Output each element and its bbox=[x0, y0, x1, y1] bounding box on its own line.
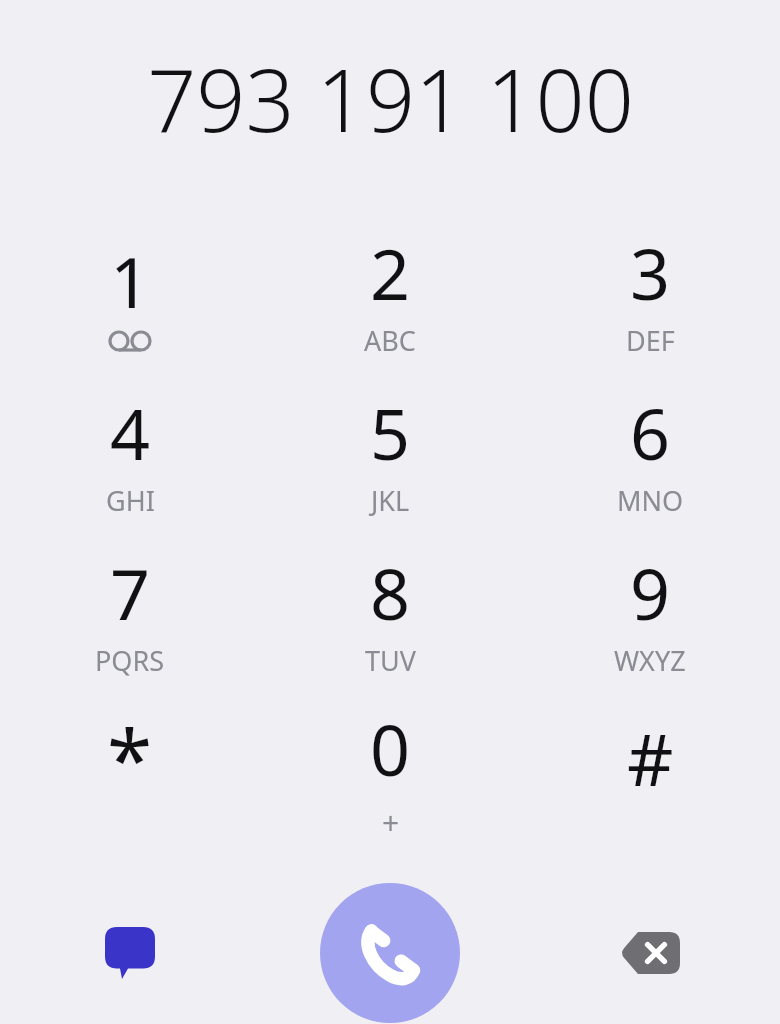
staticText: * bbox=[107, 702, 153, 814]
button[interactable]: 6 bbox=[520, 372, 780, 532]
staticText: 793 191 100 bbox=[147, 40, 634, 150]
staticText: # bbox=[627, 709, 674, 807]
staticText: 9 bbox=[630, 545, 671, 640]
staticText: DEF bbox=[626, 322, 675, 359]
button[interactable]: Send message bbox=[0, 882, 260, 1024]
staticText: 5 bbox=[370, 385, 411, 480]
staticText: MNO bbox=[617, 482, 684, 519]
staticText: 8 bbox=[370, 545, 411, 640]
staticText: JKL bbox=[371, 482, 410, 519]
button[interactable]: 9 bbox=[520, 532, 780, 692]
button[interactable]: # bbox=[520, 692, 780, 852]
button[interactable]: 0 bbox=[260, 692, 520, 852]
staticText: 6 bbox=[630, 385, 671, 480]
staticText: 7 bbox=[110, 545, 151, 640]
staticText: TUV bbox=[365, 642, 416, 679]
staticText: PQRS bbox=[95, 642, 165, 679]
staticText: 3 bbox=[630, 225, 671, 320]
button[interactable]: 2 bbox=[260, 212, 520, 372]
staticText: 1 bbox=[110, 233, 151, 328]
button[interactable]: * bbox=[0, 692, 260, 852]
button[interactable]: 4 bbox=[0, 372, 260, 532]
button[interactable]: 7 bbox=[0, 532, 260, 692]
button[interactable]: 8 bbox=[260, 532, 520, 692]
button[interactable]: Call bbox=[320, 883, 460, 1023]
button[interactable]: Backspace bbox=[520, 882, 780, 1024]
button[interactable]: 3 bbox=[520, 212, 780, 372]
staticText: 2 bbox=[370, 225, 411, 320]
staticText: 4 bbox=[110, 385, 151, 480]
staticText: 0 bbox=[370, 701, 411, 796]
staticText: WXYZ bbox=[614, 642, 686, 679]
staticText: + bbox=[382, 802, 400, 843]
staticText: GHI bbox=[106, 482, 155, 519]
staticText: ABC bbox=[364, 322, 416, 359]
button[interactable]: 1 bbox=[0, 212, 260, 372]
button[interactable]: 5 bbox=[260, 372, 520, 532]
